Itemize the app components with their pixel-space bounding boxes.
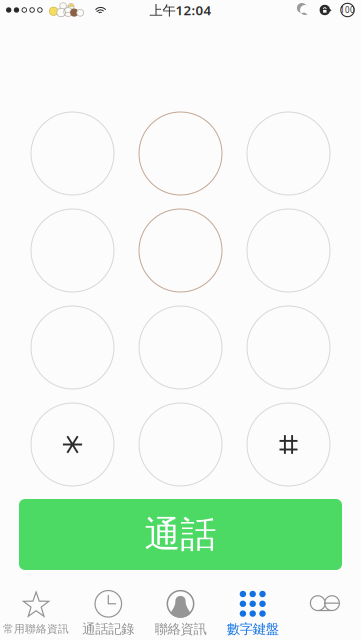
button[interactable]: 3 DEF bbox=[247, 112, 330, 195]
button[interactable]: 通話記錄 bbox=[72, 586, 144, 640]
button[interactable]: 8 TUV bbox=[139, 306, 222, 389]
button[interactable]: 星號 bbox=[31, 403, 114, 486]
staticText: 通話 bbox=[144, 512, 216, 557]
button[interactable]: 9 WXYZ bbox=[247, 306, 330, 389]
button[interactable]: 井字號 bbox=[247, 403, 330, 486]
staticText: 常用聯絡資訊 bbox=[3, 622, 69, 635]
button[interactable]: 0 bbox=[139, 403, 222, 486]
button[interactable]: 數字鍵盤 bbox=[217, 586, 289, 640]
button[interactable]: 6 MNO bbox=[247, 209, 330, 292]
button[interactable]: 2 ABC bbox=[139, 112, 222, 195]
staticText: 上午12:04 bbox=[149, 1, 211, 19]
button[interactable]: 通話 bbox=[19, 499, 342, 570]
button[interactable]: 7 PQRS bbox=[31, 306, 114, 389]
staticText: 100 bbox=[340, 5, 355, 15]
button[interactable] bbox=[289, 586, 361, 640]
button[interactable]: 1 bbox=[31, 112, 114, 195]
staticText: 數字鍵盤 bbox=[227, 621, 279, 637]
button[interactable]: 5 JKL bbox=[139, 209, 222, 292]
staticText: 聯絡資訊 bbox=[154, 621, 206, 637]
staticText: 通話記錄 bbox=[82, 621, 134, 637]
button[interactable]: 4 GHI bbox=[31, 209, 114, 292]
button[interactable]: 聯絡資訊 bbox=[144, 586, 217, 640]
button[interactable]: 常用聯絡資訊 bbox=[0, 586, 72, 640]
